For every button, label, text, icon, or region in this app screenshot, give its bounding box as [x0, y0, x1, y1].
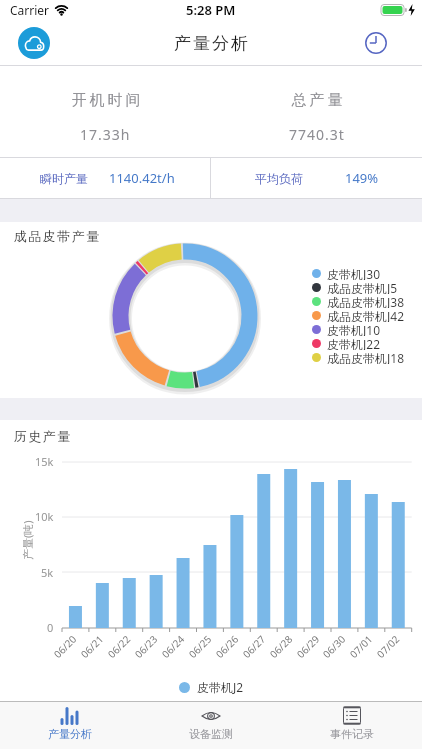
staticText: 06/23 [132, 632, 159, 659]
button[interactable]: 产量分析 [0, 702, 140, 749]
staticText: Carrier [10, 2, 50, 18]
staticText: 07/02 [374, 632, 401, 659]
staticText: 5:28 PM [186, 1, 236, 19]
staticText: 皮带机J10 [327, 322, 381, 336]
staticText: 10k [35, 509, 54, 524]
staticText: 总产量 [290, 91, 344, 110]
staticText: 06/20 [51, 632, 78, 659]
staticText: 皮带机J22 [327, 336, 381, 350]
staticText: 0 [47, 620, 54, 635]
staticText: 06/25 [186, 632, 213, 659]
staticText: 皮带机J30 [327, 266, 381, 280]
button[interactable]: 事件记录 [281, 702, 422, 749]
staticText: 历史产量 [13, 428, 71, 444]
button[interactable]: 瞬时产量 [0, 158, 210, 198]
staticText: 皮带机J2 [197, 679, 244, 695]
staticText: 06/24 [159, 632, 186, 659]
staticText: 1140.42t/h [109, 169, 175, 187]
staticText: 06/22 [105, 632, 132, 659]
button[interactable] [364, 31, 388, 55]
staticText: 06/28 [267, 632, 294, 659]
staticText: 平均负荷 [255, 171, 303, 186]
staticText: 成品皮带机J18 [327, 350, 405, 364]
staticText: 成品皮带机J42 [327, 308, 405, 322]
staticText: 06/26 [213, 632, 240, 659]
staticText: 17.33h [80, 125, 131, 144]
staticText: 产量分析 [173, 33, 249, 54]
button[interactable] [18, 27, 50, 59]
staticText: 事件记录 [330, 727, 374, 741]
button[interactable]: 平均负荷 [211, 158, 422, 198]
staticText: 瞬时产量 [40, 171, 88, 186]
staticText: 06/29 [294, 632, 321, 659]
staticText: 产量分析 [48, 727, 92, 741]
staticText: 成品皮带产量 [13, 228, 100, 244]
staticText: 产量(吨) [20, 520, 34, 560]
staticText: 07/01 [347, 632, 374, 659]
staticText: 成品皮带机J5 [327, 280, 398, 294]
staticText: 149% [345, 169, 379, 187]
staticText: 15k [35, 454, 54, 469]
staticText: 成品皮带机J38 [327, 294, 405, 308]
staticText: 5k [41, 565, 54, 580]
staticText: 设备监测 [189, 727, 233, 741]
staticText: 7740.3t [289, 125, 345, 144]
staticText: 开机时间 [70, 91, 142, 110]
staticText: 06/27 [240, 632, 267, 659]
staticText: 06/21 [78, 632, 105, 659]
staticText: 06/30 [320, 632, 347, 659]
button[interactable]: 设备监测 [140, 702, 281, 749]
